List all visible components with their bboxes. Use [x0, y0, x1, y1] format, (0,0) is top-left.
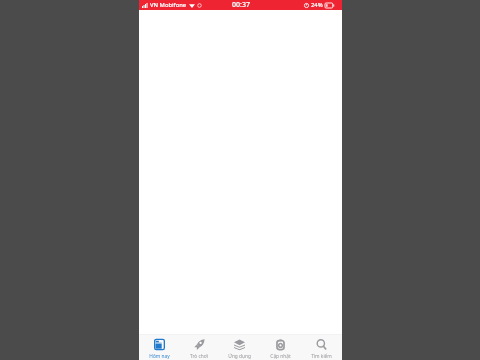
- button[interactable]: Hôm nay: [139, 335, 179, 360]
- staticText: Ứng dụng: [228, 353, 251, 360]
- button[interactable]: Trò chơi: [179, 335, 219, 360]
- button[interactable]: Cập nhật: [260, 335, 301, 360]
- staticText: VN Mobifone: [150, 1, 187, 9]
- staticText: Cập nhật: [270, 353, 291, 360]
- staticText: Hôm nay: [149, 353, 170, 360]
- staticText: 24%: [311, 1, 323, 9]
- button[interactable]: Tìm kiếm: [301, 335, 342, 360]
- staticText: Trò chơi: [190, 353, 208, 360]
- button[interactable]: Ứng dụng: [219, 335, 260, 360]
- staticText: 00:37: [232, 0, 250, 10]
- staticText: Tìm kiếm: [311, 353, 332, 360]
